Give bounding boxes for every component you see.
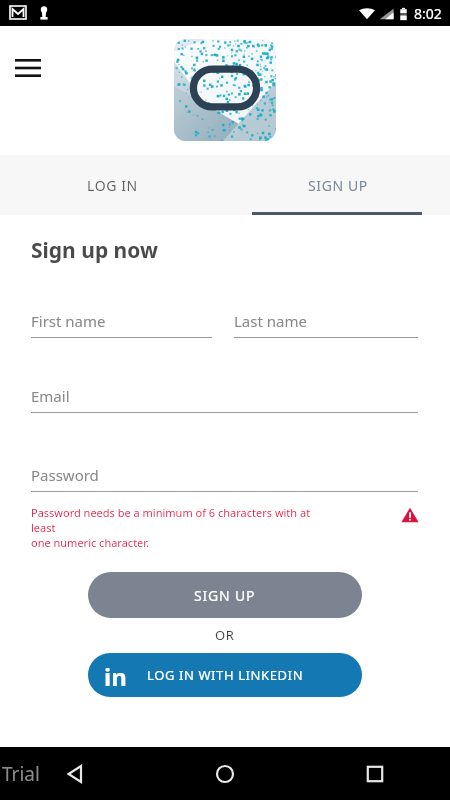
staticText: LOG IN [87,176,138,195]
staticText: Trial [2,761,40,787]
button[interactable]: Recent apps [300,747,450,800]
staticText: in [104,660,127,690]
staticText: LOG IN WITH LINKEDIN [147,666,304,684]
button[interactable]: Last name [234,309,418,338]
button[interactable]: First name [31,309,212,338]
button[interactable]: Open navigation menu [6,46,50,90]
staticText: Password needs be a minimum of 6 charact… [31,505,331,550]
staticText: Email [31,386,70,406]
staticText: First name [31,311,106,331]
staticText: SIGN UP [194,586,256,605]
staticText: Password [31,465,99,485]
button[interactable]: SIGN UP [88,572,362,618]
button[interactable]: in [88,653,362,697]
button[interactable]: Email [31,384,418,413]
staticText: Sign up now [31,236,158,265]
staticText: 8:02 [414,4,442,23]
button[interactable]: SIGN UP [225,155,450,215]
button[interactable]: Home [150,747,300,800]
staticText: Last name [234,311,307,331]
other: Password error warning [400,505,420,525]
button[interactable]: Password [31,463,418,492]
staticText: OR [215,626,235,644]
staticText: SIGN UP [308,176,368,195]
button[interactable]: Back [0,747,150,800]
button[interactable]: LOG IN [0,155,225,215]
button[interactable]: App logo [174,39,276,141]
